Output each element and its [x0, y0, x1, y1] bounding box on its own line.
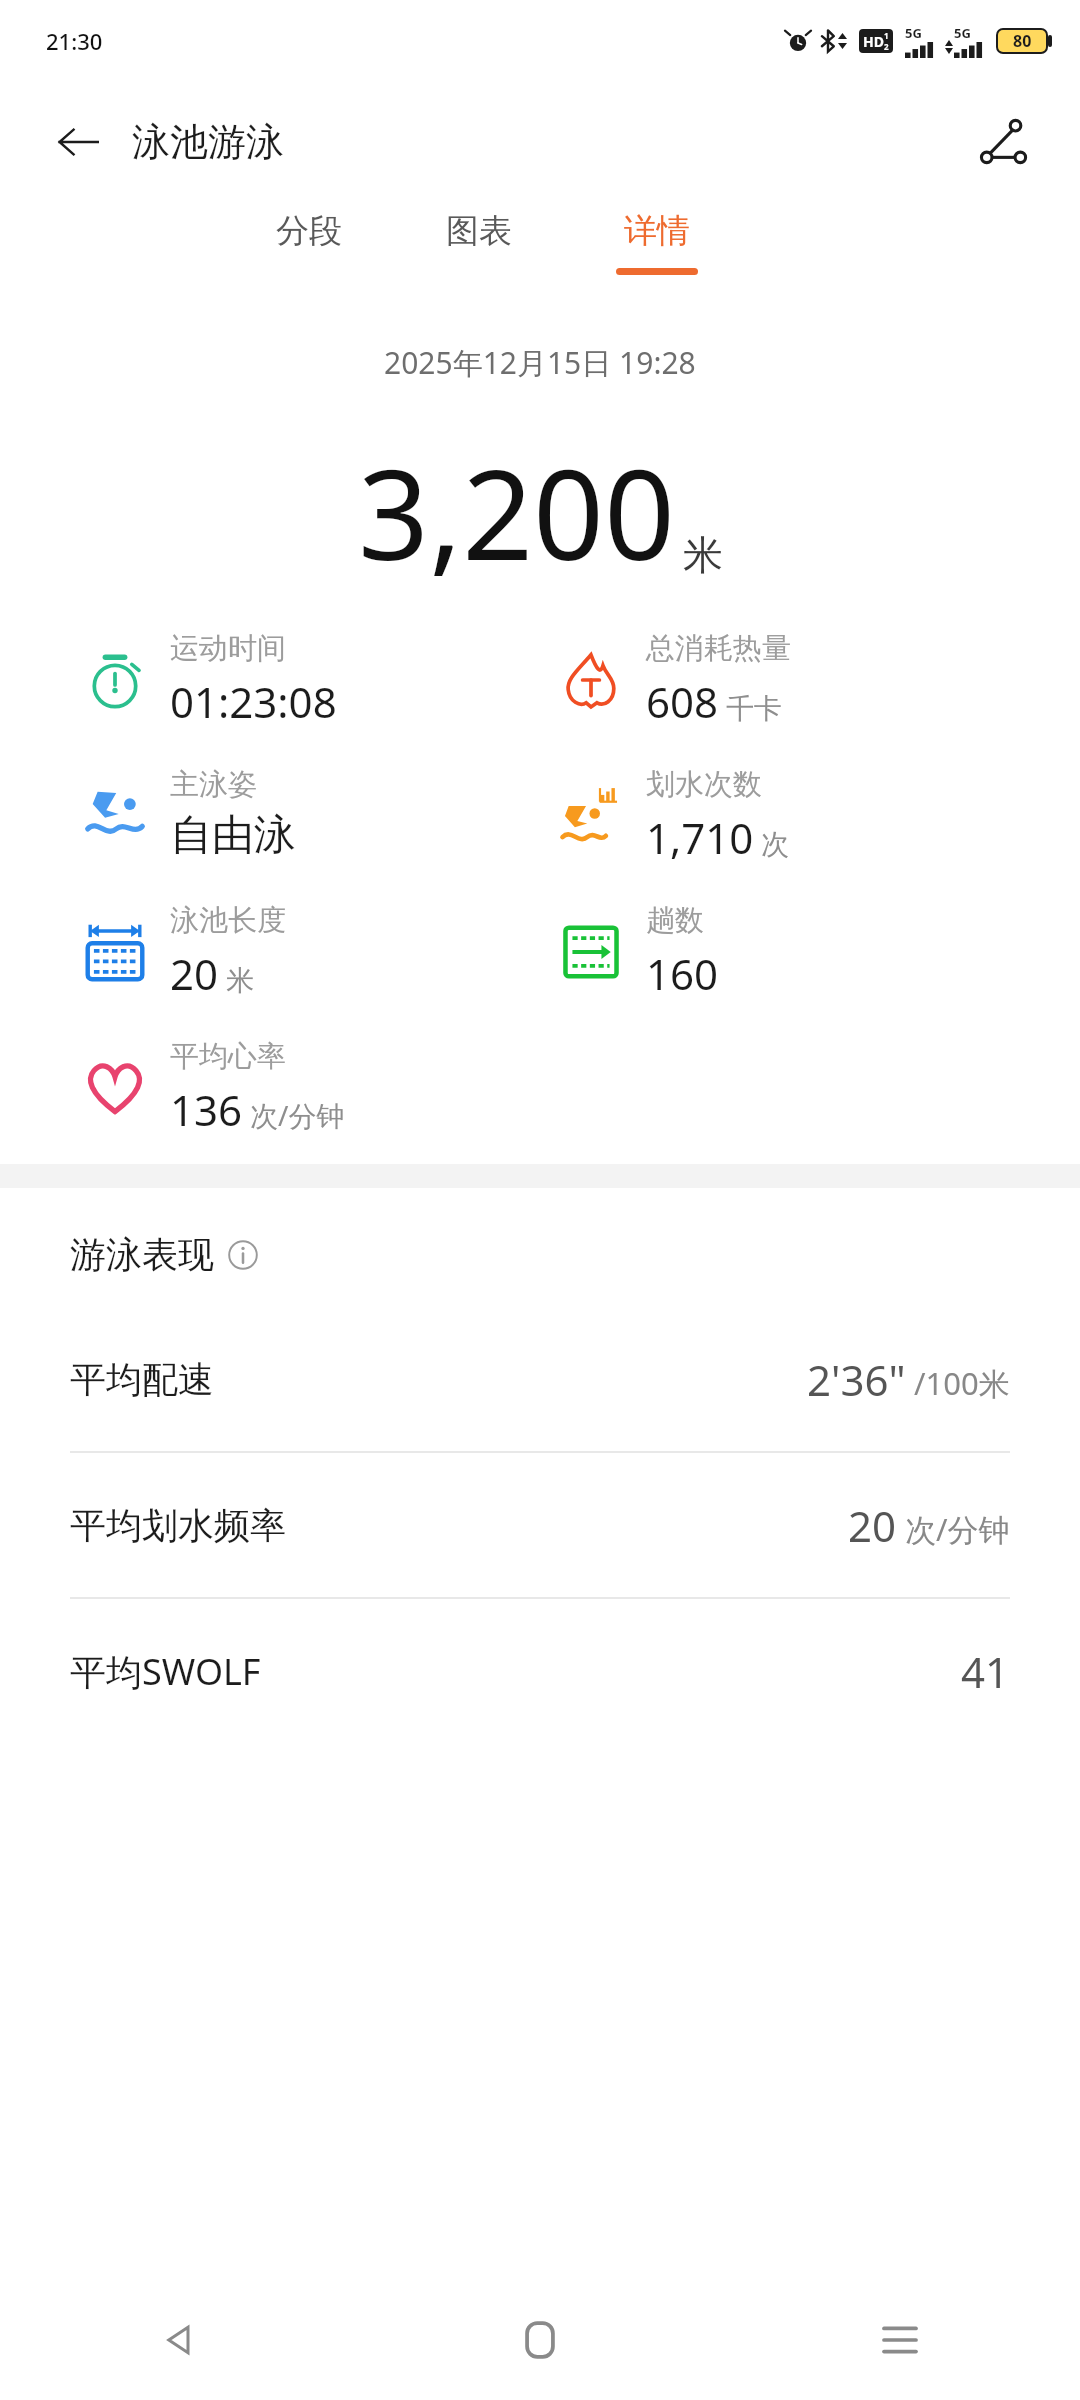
staticText: 5G — [954, 24, 971, 42]
staticText: 20 — [848, 1497, 897, 1554]
staticText: 次/分钟 — [250, 1096, 345, 1134]
button[interactable]: 划水次数 — [552, 766, 1080, 866]
staticText: 主泳姿 — [170, 766, 257, 803]
staticText: 泳池长度 — [170, 902, 286, 939]
staticText: 41 — [961, 1643, 1010, 1700]
staticText: 趟数 — [646, 902, 704, 939]
staticText: 千卡 — [726, 691, 782, 726]
button[interactable]: 主泳姿 — [76, 766, 540, 862]
staticText: 2025年12月15日 19:28 — [384, 342, 696, 383]
staticText: 3,200 — [358, 427, 675, 596]
staticText: 平均SWOLF — [70, 1647, 261, 1696]
staticText: 详情 — [624, 210, 690, 252]
button[interactable]: 平均心率 — [76, 1038, 540, 1138]
staticText: 2'36" — [807, 1351, 906, 1408]
staticText: 5G — [905, 24, 922, 42]
staticText: 游泳表现 — [70, 1232, 214, 1277]
button[interactable]: Back — [0, 2280, 360, 2400]
staticText: /100米 — [906, 1362, 1010, 1404]
staticText: 1 — [884, 30, 889, 41]
staticText: 1,710 — [646, 809, 754, 866]
staticText: 运动时间 — [170, 630, 286, 667]
staticText: 160 — [646, 945, 719, 1002]
staticText: 总消耗热量 — [646, 630, 791, 667]
button[interactable]: 分段 — [270, 202, 348, 283]
staticText: 平均配速 — [70, 1357, 214, 1402]
button[interactable]: 详情 — [610, 202, 704, 283]
button[interactable]: 运动时间 — [76, 630, 540, 730]
staticText: 自由泳 — [170, 809, 296, 862]
button[interactable]: Share — [972, 110, 1036, 174]
staticText: 米 — [226, 963, 254, 998]
staticText: 80 — [1013, 30, 1032, 52]
staticText: 01:23:08 — [170, 673, 337, 730]
staticText: 米 — [683, 530, 723, 580]
button[interactable]: 平均划水频率 — [0, 1453, 1080, 1599]
button[interactable]: 总消耗热量 — [552, 630, 1080, 730]
staticText: 21:30 — [46, 26, 103, 56]
staticText: 平均划水频率 — [70, 1503, 286, 1548]
staticText: 136 — [170, 1081, 243, 1138]
staticText: 平均心率 — [170, 1038, 286, 1075]
button[interactable]: Recent apps — [720, 2280, 1080, 2400]
button[interactable]: 平均SWOLF — [0, 1599, 1080, 1743]
staticText: 次/分钟 — [897, 1508, 1010, 1550]
staticText: 泳池游泳 — [132, 118, 284, 166]
button[interactable]: Home — [360, 2280, 720, 2400]
staticText: 图表 — [446, 210, 512, 252]
staticText: 20 — [170, 945, 219, 1002]
staticText: 2 — [884, 41, 889, 52]
staticText: 划水次数 — [646, 766, 762, 803]
button[interactable]: Back — [50, 114, 106, 170]
button[interactable]: 泳池长度 — [76, 902, 540, 1002]
staticText: 次 — [761, 827, 789, 862]
button[interactable]: 图表 — [440, 202, 518, 283]
button[interactable]: 平均配速 — [0, 1307, 1080, 1453]
staticText: HD — [863, 32, 884, 51]
staticText: 分段 — [276, 210, 342, 252]
button[interactable]: 趟数 — [552, 902, 1080, 1002]
staticText: 608 — [646, 673, 719, 730]
